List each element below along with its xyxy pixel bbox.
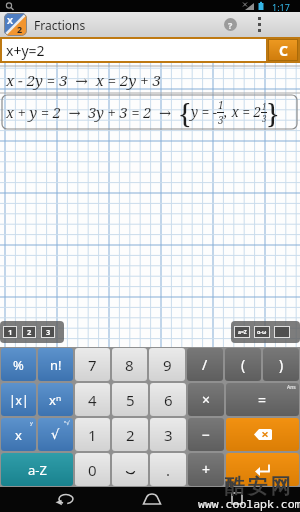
button[interactable]: 0 — [75, 453, 110, 486]
staticText: 3 — [164, 425, 173, 445]
staticText: √ — [51, 427, 60, 442]
staticText: 7 — [88, 355, 97, 375]
staticText: y — [30, 419, 33, 426]
button[interactable]: a=Z — [234, 326, 250, 338]
staticText: a-Z — [28, 461, 47, 479]
staticText: x − 2y = 3 → x = 2y + 3 — [6, 70, 161, 90]
button[interactable]: 3 — [41, 326, 55, 338]
button[interactable]: × — [188, 383, 224, 416]
button[interactable]: 8 — [112, 348, 147, 381]
button[interactable]: a-Z — [1, 453, 73, 486]
button[interactable]: ? — [224, 18, 237, 31]
button[interactable]: ) — [263, 348, 299, 381]
staticText: 1:17 — [272, 1, 290, 13]
staticText: + — [202, 460, 211, 479]
staticText: 酷安网 — [223, 474, 292, 499]
staticText: 5 — [126, 390, 135, 410]
staticText: α-ω — [257, 329, 267, 336]
staticText: 3 — [218, 113, 224, 127]
button[interactable]: 2 — [112, 418, 148, 451]
button[interactable]: 4 — [75, 383, 110, 416]
staticText: , — [224, 103, 228, 121]
staticText: 3 — [262, 113, 267, 124]
staticText: 1 — [218, 98, 224, 112]
staticText: y = − — [191, 103, 217, 121]
staticText: X — [7, 14, 14, 26]
staticText: |x| — [9, 392, 29, 408]
staticText: 2 — [17, 23, 23, 35]
staticText: xⁿ — [49, 391, 62, 409]
staticText: ( — [241, 355, 246, 374]
button[interactable]: x − 2y = 3 → x = 2y + 3 — [0, 66, 300, 93]
button[interactable]: 9 — [149, 348, 185, 381]
staticText: / — [202, 355, 208, 374]
staticText: x + y = 2 → 3y + 3 = 2 → — [6, 102, 179, 122]
staticText: a=Z — [238, 329, 247, 336]
staticText: } — [267, 95, 279, 129]
button[interactable] — [224, 487, 252, 512]
staticText: 1 — [8, 327, 13, 337]
button[interactable]: ( — [225, 348, 261, 381]
staticText: { — [179, 95, 191, 129]
button[interactable]: α-ω — [254, 326, 270, 338]
staticText: ? — [228, 19, 233, 31]
button[interactable] — [226, 418, 299, 451]
staticText: 3 — [46, 327, 51, 337]
button[interactable]: . — [150, 453, 186, 486]
staticText: % — [13, 356, 24, 374]
staticText: 4 — [88, 390, 97, 410]
button[interactable]: C — [268, 39, 298, 61]
staticText: n! — [50, 356, 62, 374]
staticText: × — [202, 390, 211, 409]
button[interactable]: |x| — [1, 383, 36, 416]
button[interactable]: xⁿ — [38, 383, 73, 416]
button[interactable] — [138, 487, 166, 512]
button[interactable]: X — [4, 13, 27, 36]
button[interactable] — [258, 17, 261, 32]
staticText: . — [166, 460, 171, 480]
staticText: 1 — [262, 101, 267, 112]
button[interactable]: x — [1, 418, 36, 451]
staticText: x+y=2 — [6, 41, 45, 60]
staticText: 1 — [88, 425, 97, 445]
staticText: Ans — [287, 384, 296, 391]
staticText: ⁿ√ — [64, 419, 70, 426]
button[interactable] — [52, 487, 80, 512]
button[interactable] — [274, 326, 290, 338]
staticText: x = 2 — [228, 103, 261, 121]
button[interactable]: 5 — [112, 383, 148, 416]
staticText: = — [258, 390, 267, 409]
staticText: 0 — [88, 460, 97, 480]
button[interactable]: 7 — [75, 348, 110, 381]
button[interactable] — [226, 453, 299, 486]
button[interactable]: n! — [38, 348, 73, 381]
staticText: − — [202, 425, 211, 444]
button[interactable]: x+y=2 — [2, 39, 266, 61]
button[interactable]: + — [188, 453, 224, 486]
staticText: Fractions — [34, 17, 86, 33]
staticText: x — [15, 426, 22, 444]
button[interactable]: 3 — [150, 418, 186, 451]
staticText: www.coolapk.com — [198, 496, 300, 512]
button[interactable]: 1 — [3, 326, 17, 338]
button[interactable] — [112, 453, 148, 486]
staticText: ) — [279, 355, 284, 374]
button[interactable]: 2 — [22, 326, 36, 338]
button[interactable]: / — [187, 348, 223, 381]
staticText: 2 — [27, 327, 32, 337]
staticText: 8 — [125, 355, 134, 375]
button[interactable]: = — [226, 383, 299, 416]
staticText: C — [279, 41, 288, 60]
button[interactable]: 1 — [75, 418, 110, 451]
button[interactable]: 6 — [150, 383, 186, 416]
button[interactable]: − — [188, 418, 224, 451]
staticText: 6 — [164, 390, 173, 410]
staticText: 2 — [126, 425, 135, 445]
button[interactable]: √ — [38, 418, 73, 451]
button[interactable]: % — [1, 348, 36, 381]
staticText: 9 — [163, 355, 172, 375]
button[interactable]: x + y = 2 → 3y + 3 = 2 → — [0, 95, 300, 129]
